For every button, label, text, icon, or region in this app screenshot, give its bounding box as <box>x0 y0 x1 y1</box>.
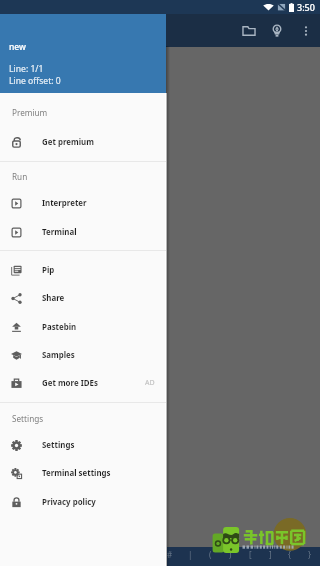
button[interactable]: Samples <box>0 341 166 369</box>
staticText: Get premium <box>42 137 94 148</box>
staticText: Pip <box>42 265 55 276</box>
button[interactable]: } <box>300 547 320 561</box>
staticText: | <box>188 549 193 560</box>
button[interactable]: | <box>180 547 200 561</box>
staticText: 3:50 <box>297 1 315 13</box>
button[interactable]: [ <box>240 547 260 561</box>
button[interactable]: # <box>160 547 180 561</box>
button[interactable]: Interpreter <box>0 189 166 217</box>
staticText: Terminal <box>42 227 77 238</box>
staticText: { <box>288 549 292 560</box>
button[interactable]: Get more IDEs <box>0 369 166 397</box>
button[interactable]: ( <box>200 547 220 561</box>
button[interactable]: { <box>280 547 300 561</box>
staticText: Line: 1/1 <box>9 63 44 75</box>
button[interactable]: Get premium <box>0 128 166 156</box>
staticText: Run <box>12 171 28 182</box>
button[interactable]: More options <box>292 14 320 47</box>
button[interactable]: Tips <box>263 14 291 47</box>
staticText: Pastebin <box>42 322 77 333</box>
button[interactable]: Open file <box>235 14 263 47</box>
staticText: new <box>9 41 26 53</box>
button[interactable]: ] <box>260 547 280 561</box>
staticText: Interpreter <box>42 198 87 209</box>
staticText: Settings <box>12 413 44 424</box>
staticText: Settings <box>42 440 75 451</box>
staticText: # <box>167 549 173 560</box>
staticText: Premium <box>12 107 48 118</box>
button[interactable]: Privacy policy <box>0 488 166 516</box>
staticText: Share <box>42 293 65 304</box>
button[interactable]: Terminal settings <box>0 459 166 487</box>
staticText: [ <box>249 549 252 560</box>
staticText: AD <box>145 378 155 388</box>
button[interactable]: Settings <box>0 431 166 459</box>
button[interactable]: Pastebin <box>0 313 166 341</box>
staticText: Samples <box>42 350 75 361</box>
staticText: Line offset: 0 <box>9 75 61 87</box>
button[interactable]: Terminal <box>0 218 166 246</box>
staticText: Privacy policy <box>42 497 96 508</box>
button[interactable]: ) <box>220 547 240 561</box>
staticText: Terminal settings <box>42 468 111 479</box>
staticText: ( <box>209 549 212 560</box>
staticText: Get more IDEs <box>42 378 98 389</box>
button[interactable]: Pip <box>0 256 166 284</box>
button[interactable]: Share <box>0 284 166 312</box>
staticText: } <box>308 549 312 560</box>
staticText: ) <box>229 549 232 560</box>
staticText: ] <box>269 549 272 560</box>
